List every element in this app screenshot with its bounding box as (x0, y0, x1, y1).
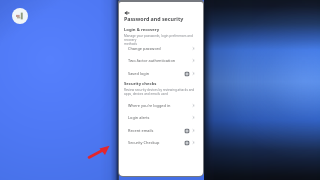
staticText: Where you're logged in (128, 103, 171, 108)
staticText: Two-factor authentication (128, 58, 176, 63)
button[interactable]: Security Checkup (119, 136, 203, 149)
staticText: Saved login (128, 71, 150, 76)
staticText: Security checks (124, 81, 157, 87)
staticText: Recent emails (128, 128, 154, 133)
button[interactable]: Saved login (119, 67, 203, 80)
button[interactable]: Change password (119, 42, 203, 55)
staticText: Change password (128, 46, 161, 51)
button[interactable]: App logo (12, 8, 28, 24)
button[interactable]: Back (121, 7, 132, 18)
button[interactable]: Two-factor authentication (119, 54, 203, 67)
button[interactable]: Recent emails (119, 124, 203, 137)
staticText: Password and security (124, 15, 184, 22)
staticText: Security Checkup (128, 140, 160, 145)
staticText: Login alerts (128, 115, 150, 120)
button[interactable]: Where you're logged in (119, 99, 203, 112)
staticText: Login & recovery (124, 27, 160, 33)
button[interactable]: Login alerts (119, 111, 203, 124)
staticText: Review security devices by reviewing att… (124, 88, 195, 96)
staticText: Manage your passwords, login preferences… (124, 34, 198, 46)
